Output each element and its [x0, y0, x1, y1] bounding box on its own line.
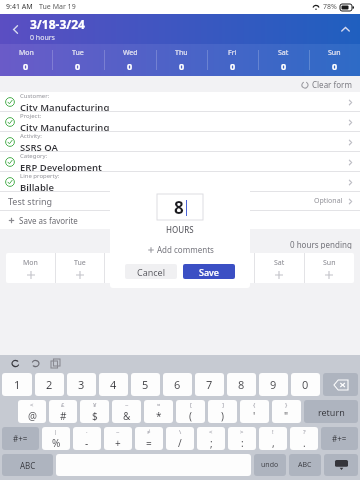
button[interactable]: ¤ — [144, 400, 173, 423]
staticText: @ — [28, 409, 37, 423]
staticText: return — [318, 406, 345, 418]
button[interactable]: · — [73, 427, 101, 450]
button[interactable]: 0 — [291, 373, 320, 396]
button[interactable]: 6 — [163, 373, 192, 396]
staticText: Mon — [19, 48, 34, 58]
staticText: ! — [272, 428, 274, 436]
button[interactable]: Sat — [258, 44, 309, 76]
button[interactable]: ~ — [112, 400, 141, 423]
button[interactable]: Sun — [309, 44, 360, 76]
staticText: undo — [261, 460, 279, 470]
button[interactable]: 8 — [227, 373, 256, 396]
button[interactable]: Sat — [254, 253, 304, 283]
button[interactable]: Category: — [0, 152, 360, 172]
staticText: | — [54, 428, 58, 436]
button[interactable]: { — [240, 400, 269, 423]
staticText: 0 — [75, 60, 81, 72]
button[interactable]: undo — [254, 454, 286, 476]
button[interactable]: 3 — [67, 373, 96, 396]
staticText: Thu — [175, 48, 188, 58]
button[interactable]: ABC — [289, 454, 321, 476]
button[interactable]: ABC — [2, 454, 53, 476]
button[interactable]: Paste — [48, 356, 62, 370]
button[interactable]: ~ — [104, 427, 132, 450]
staticText: 0 — [127, 60, 133, 72]
button[interactable]: ] — [208, 400, 237, 423]
button[interactable]: Hide keyboard — [324, 454, 358, 476]
staticText: 0 — [230, 60, 236, 72]
button[interactable]: Wed — [104, 253, 154, 283]
button[interactable]: Thu — [156, 44, 207, 76]
button[interactable]: Customer: — [0, 92, 360, 112]
staticText: 9 — [270, 377, 277, 392]
button[interactable]: > — [228, 427, 256, 450]
button[interactable]: [ — [176, 400, 205, 423]
button[interactable]: Wed — [104, 44, 156, 76]
button[interactable]: 7 — [195, 373, 224, 396]
staticText: Save — [199, 266, 220, 278]
button[interactable]: } — [272, 400, 301, 423]
staticText: ABC — [298, 460, 312, 470]
staticText: / — [178, 436, 182, 450]
button[interactable]: < — [18, 400, 46, 423]
button[interactable]: Tue — [52, 44, 104, 76]
button[interactable]: ≠ — [135, 427, 163, 450]
staticText: Line property: — [20, 172, 60, 180]
button[interactable]: Project: — [0, 112, 360, 132]
button[interactable]: Symbols — [321, 427, 358, 450]
button[interactable]: Add comments — [147, 244, 214, 255]
button[interactable]: 1 — [2, 373, 32, 396]
button[interactable]: \ — [166, 427, 194, 450]
button[interactable]: 2 — [35, 373, 64, 396]
button[interactable]: Mon — [0, 44, 52, 76]
button[interactable]: Save — [183, 264, 235, 279]
staticText: Customer: — [20, 92, 50, 100]
button[interactable]: Fri — [207, 44, 258, 76]
staticText: #+= — [13, 433, 28, 444]
button[interactable]: Redo — [28, 356, 42, 370]
staticText: & — [123, 409, 131, 423]
button[interactable]: Mon — [6, 253, 55, 283]
staticText: Sat — [274, 258, 285, 268]
button[interactable]: ¥ — [80, 400, 109, 423]
staticText: 4 — [110, 377, 117, 392]
button[interactable]: ? — [290, 427, 318, 450]
button[interactable]: 4 — [99, 373, 128, 396]
button[interactable]: Backspace — [323, 373, 358, 396]
staticText: ~ — [125, 401, 129, 409]
button[interactable]: £ — [49, 400, 77, 423]
button[interactable]: ! — [259, 427, 287, 450]
button[interactable]: Save as favorite — [0, 211, 360, 229]
button[interactable]: return — [304, 400, 358, 423]
button[interactable]: < — [197, 427, 225, 450]
button[interactable]: Test string — [0, 192, 360, 210]
button[interactable]: Sun — [304, 253, 354, 283]
button[interactable]: 8 — [157, 194, 203, 220]
button[interactable]: | — [42, 427, 70, 450]
button[interactable]: Symbols — [2, 427, 39, 450]
button[interactable]: Line property: — [0, 172, 360, 192]
staticText: 5 — [142, 377, 149, 392]
staticText: £ — [61, 401, 65, 409]
button[interactable]: 9 — [259, 373, 288, 396]
staticText: Sat — [278, 48, 289, 58]
button[interactable]: 5 — [131, 373, 160, 396]
button[interactable]: Tue — [55, 253, 104, 283]
staticText: Project: — [20, 112, 42, 120]
staticText: Save as favorite — [19, 215, 78, 226]
button[interactable]: Thu — [154, 253, 204, 283]
staticText: 0 hours — [30, 33, 55, 43]
button[interactable]: Back — [0, 14, 30, 44]
button[interactable]: Collapse — [330, 14, 360, 44]
button[interactable]: Cancel — [125, 264, 177, 279]
staticText: ABC — [20, 460, 36, 471]
staticText: 78% — [323, 2, 337, 12]
button[interactable]: Clear form — [301, 79, 352, 90]
button[interactable]: Undo — [8, 356, 22, 370]
staticText: } — [285, 401, 288, 409]
staticText: Add comments — [157, 244, 214, 255]
button[interactable]: Fri — [204, 253, 254, 283]
staticText: # — [60, 409, 67, 423]
button[interactable]: Activity: — [0, 132, 360, 152]
